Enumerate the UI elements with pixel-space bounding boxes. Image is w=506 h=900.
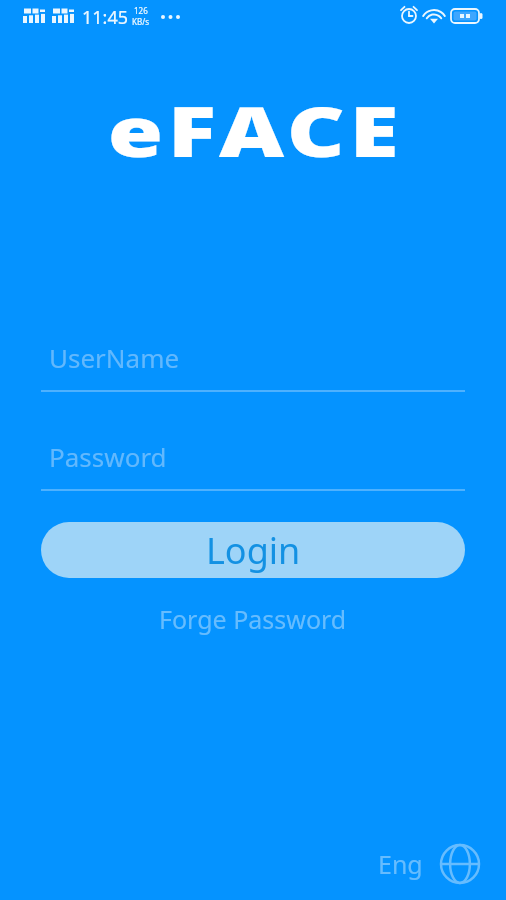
staticText: 11:45 — [82, 5, 129, 30]
staticText: 126 — [134, 5, 148, 16]
staticText: Password — [49, 439, 167, 474]
button[interactable]: UserName — [41, 340, 465, 392]
button[interactable]: Eng — [378, 843, 481, 885]
staticText: Eng — [378, 847, 423, 881]
other: Change language — [439, 843, 481, 885]
staticText: Login — [206, 526, 301, 575]
button[interactable]: Forge Password — [149, 596, 357, 642]
staticText: UserName — [49, 340, 180, 375]
staticText: eFACE — [108, 83, 404, 177]
staticText: KB/s — [132, 16, 149, 27]
button[interactable]: Login — [41, 522, 465, 578]
button[interactable]: Password — [41, 439, 465, 491]
staticText: Forge Password — [159, 602, 347, 636]
